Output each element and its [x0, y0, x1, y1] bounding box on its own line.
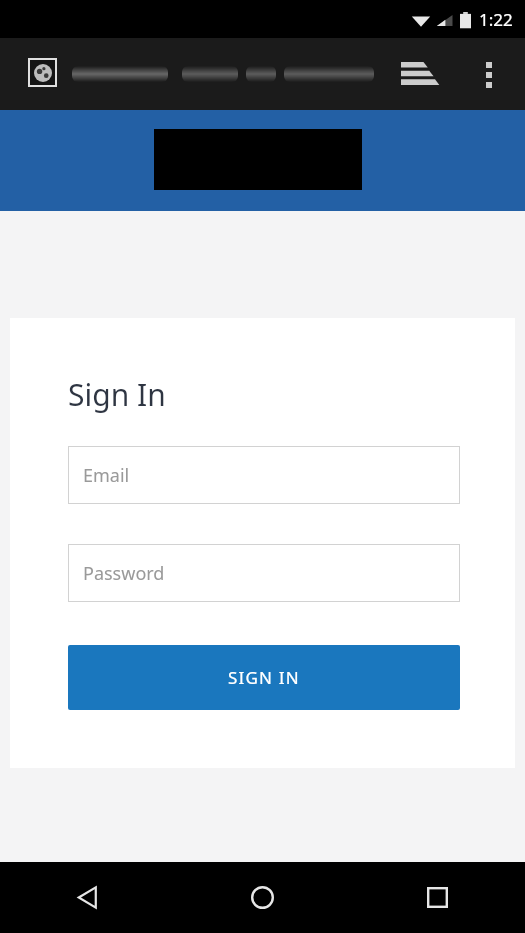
- staticText: 1:22: [479, 8, 513, 31]
- staticText: Password: [83, 561, 165, 586]
- button[interactable]: Password: [68, 544, 460, 602]
- button[interactable]: Email: [68, 446, 460, 504]
- button[interactable]: Home: [175, 862, 350, 933]
- staticText: Sign In: [68, 374, 166, 415]
- button[interactable]: Tabs: [396, 60, 440, 90]
- button[interactable]: SIGN IN: [68, 645, 460, 710]
- button[interactable]: Page info: [28, 58, 57, 87]
- staticText: SIGN IN: [228, 666, 300, 689]
- button[interactable]: More options: [468, 56, 510, 94]
- staticText: Email: [83, 463, 130, 488]
- button[interactable]: Address bar: [72, 62, 380, 86]
- button[interactable]: Recent apps: [350, 862, 525, 933]
- button[interactable]: Back: [0, 862, 175, 933]
